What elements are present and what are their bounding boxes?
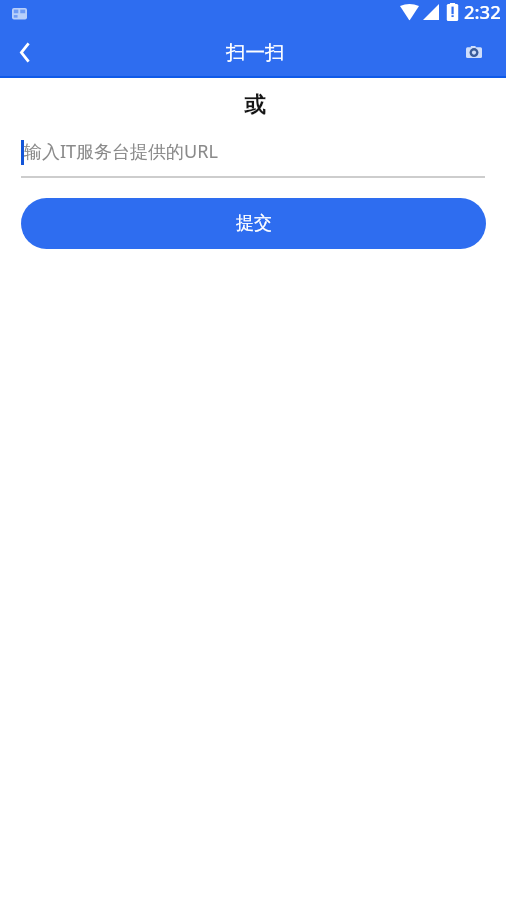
button[interactable]: Camera — [449, 27, 499, 77]
staticText: 输入IT服务台提供的URL — [24, 139, 218, 164]
staticText: 2:32 — [464, 0, 501, 24]
button[interactable]: Back — [0, 27, 50, 77]
button[interactable]: 输入IT服务台提供的URL — [21, 139, 485, 178]
button[interactable]: 提交 — [21, 198, 486, 249]
staticText: 或 — [2, 91, 506, 118]
staticText: 扫一扫 — [226, 40, 285, 65]
staticText: 提交 — [236, 212, 272, 235]
